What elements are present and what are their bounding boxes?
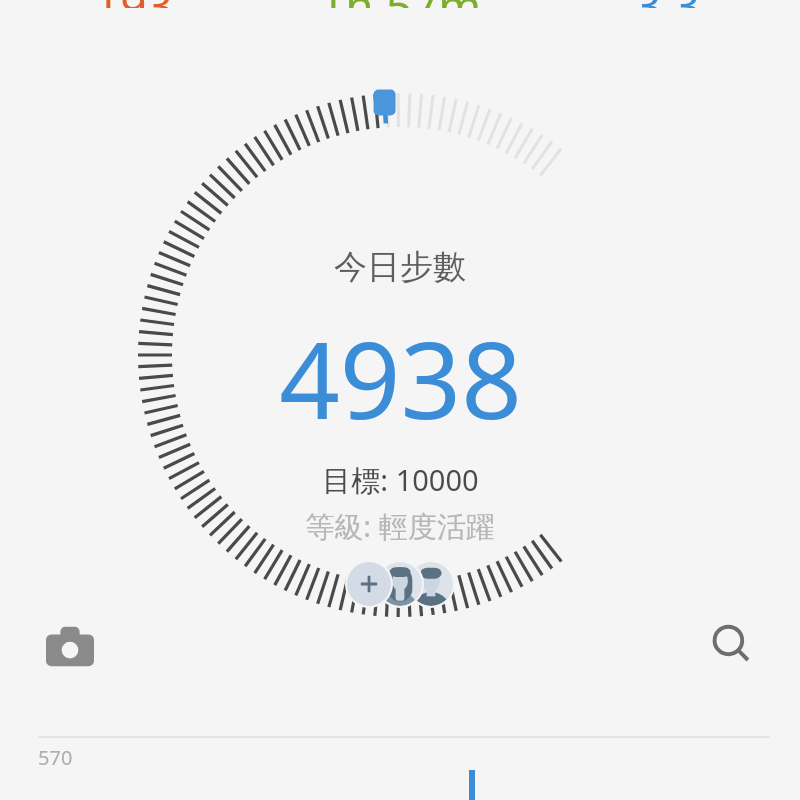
staticText: 今日步數: [334, 246, 466, 288]
staticText: 3.3: [635, 0, 700, 8]
staticText: 等級: 輕度活躍: [305, 506, 495, 546]
button[interactable]: 193: [0, 0, 266, 34]
button[interactable]: Friends: [345, 559, 457, 609]
button[interactable]: Camera: [36, 612, 104, 680]
staticText: 1h 57m: [319, 0, 482, 8]
staticText: 目標: 10000: [322, 460, 479, 500]
button[interactable]: 1h 57m: [266, 0, 534, 34]
staticText: 193: [94, 0, 173, 8]
button[interactable]: 3.3: [534, 0, 800, 34]
staticText: 570: [38, 744, 73, 771]
button[interactable]: Search: [699, 612, 767, 680]
staticText: 4938: [279, 306, 522, 450]
